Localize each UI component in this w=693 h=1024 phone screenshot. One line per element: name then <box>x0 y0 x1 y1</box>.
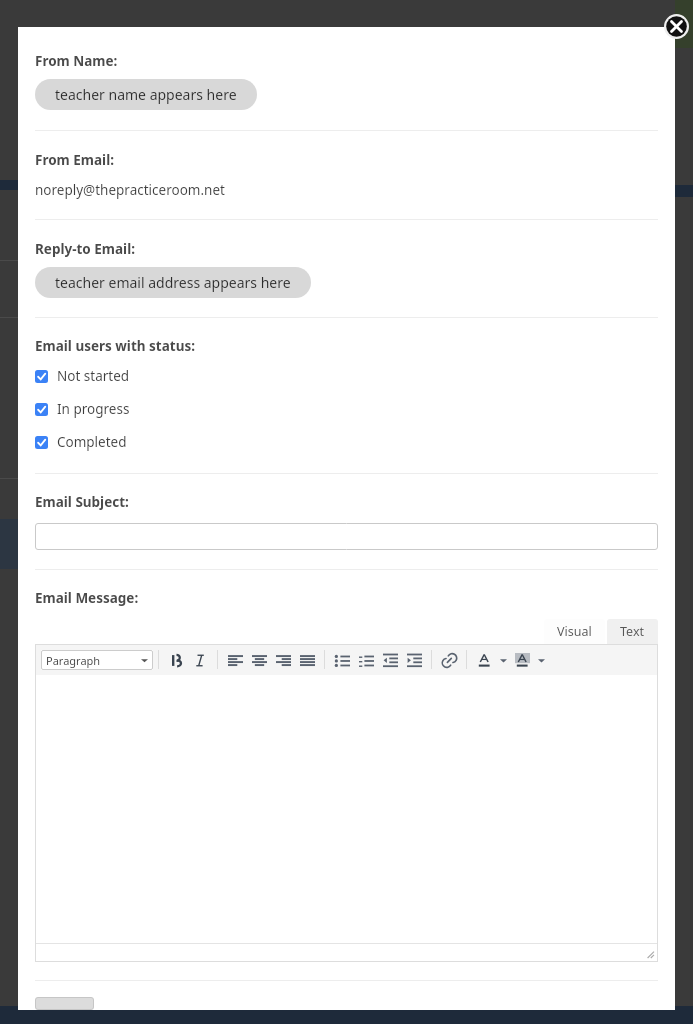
button[interactable]: Text color <box>472 647 496 673</box>
button[interactable]: Paragraph <box>41 650 153 670</box>
button[interactable]: In progress <box>35 396 658 422</box>
button[interactable]: Italic <box>188 647 212 673</box>
staticText: teacher name appears here <box>55 85 237 104</box>
button[interactable]: More colors <box>534 647 548 673</box>
staticText: From Name: <box>35 52 118 70</box>
staticText: Email Subject: <box>35 493 129 511</box>
staticText: teacher email address appears here <box>55 273 291 292</box>
button[interactable]: More colors <box>496 647 510 673</box>
button[interactable]: Decrease indent <box>378 647 402 673</box>
staticText: noreply@thepracticeroom.net <box>35 181 225 199</box>
staticText: In progress <box>57 400 130 418</box>
staticText: From Email: <box>35 151 114 169</box>
button[interactable]: Completed <box>35 429 658 455</box>
button[interactable]: Justify <box>295 647 319 673</box>
button[interactable]: Bold <box>164 647 188 673</box>
button[interactable]: Increase indent <box>402 647 426 673</box>
button[interactable]: teacher email address appears here <box>35 267 311 298</box>
button[interactable]: Highlight color <box>510 647 534 673</box>
staticText: Text <box>620 623 645 640</box>
staticText: Visual <box>557 623 592 640</box>
button[interactable]: Not started <box>35 363 658 389</box>
staticText: Paragraph <box>46 653 101 668</box>
button[interactable]: Bulleted list <box>330 647 354 673</box>
button[interactable]: Numbered list <box>354 647 378 673</box>
button[interactable]: Insert link <box>437 647 461 673</box>
staticText: Email users with status: <box>35 337 195 355</box>
button[interactable]: Close <box>664 14 689 39</box>
staticText: Reply-to Email: <box>35 240 135 258</box>
button[interactable]: teacher name appears here <box>35 79 257 110</box>
button[interactable]: Align center <box>247 647 271 673</box>
button[interactable]: Align right <box>271 647 295 673</box>
staticText: Not started <box>57 367 130 385</box>
staticText: Completed <box>57 433 127 451</box>
button[interactable]: Align left <box>223 647 247 673</box>
button[interactable]: Visual <box>544 619 605 644</box>
button[interactable]: Text <box>607 619 658 644</box>
button[interactable]: Send <box>35 997 94 1010</box>
button[interactable] <box>35 523 658 550</box>
staticText: Email Message: <box>35 589 139 607</box>
